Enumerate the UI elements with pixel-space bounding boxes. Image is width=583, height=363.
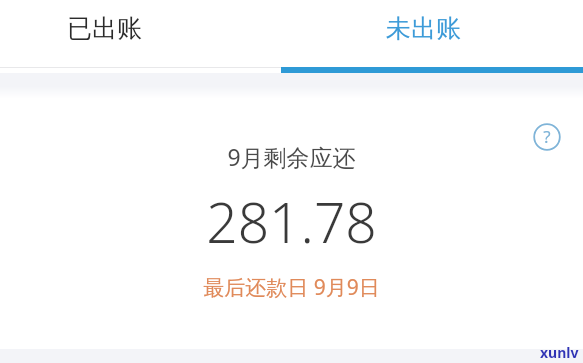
staticText: 未出账 — [386, 13, 461, 44]
button[interactable]: 未出账 — [281, 0, 583, 67]
staticText: 已出账 — [67, 13, 142, 44]
staticText: 281.78 — [206, 184, 377, 259]
button[interactable]: Help — [530, 120, 564, 154]
staticText: 9月剩余应还 — [227, 141, 356, 172]
button[interactable]: 已出账 — [0, 0, 281, 67]
staticText: 最后还款日 9月9日 — [203, 273, 380, 302]
staticText: xunlv — [540, 343, 579, 362]
staticText: ? — [543, 125, 551, 148]
